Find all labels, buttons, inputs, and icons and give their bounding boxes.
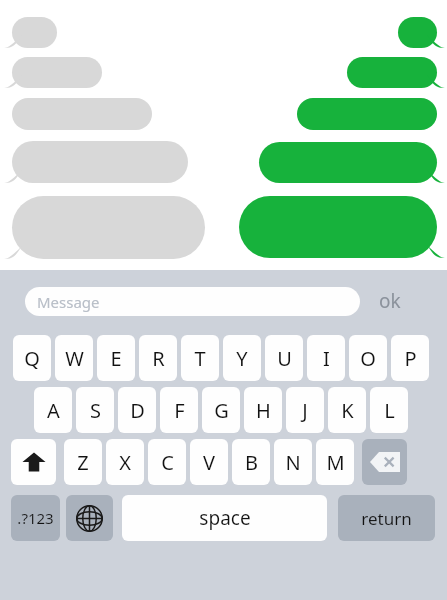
button[interactable]: space <box>122 495 327 541</box>
button[interactable]: Backspace <box>362 439 407 485</box>
staticText: J <box>302 397 308 424</box>
staticText: D <box>130 397 145 424</box>
button[interactable]: Q <box>13 335 51 381</box>
staticText: E <box>110 345 122 372</box>
button[interactable] <box>12 17 67 48</box>
button[interactable]: U <box>265 335 303 381</box>
button[interactable]: W <box>55 335 93 381</box>
button[interactable]: Change keyboard language <box>66 495 113 541</box>
button[interactable]: R <box>139 335 177 381</box>
staticText: O <box>360 345 376 372</box>
button[interactable]: Z <box>64 439 102 485</box>
button[interactable]: Shift <box>11 439 56 485</box>
staticText: I <box>323 345 330 372</box>
staticText: G <box>214 397 229 424</box>
button[interactable] <box>12 196 215 259</box>
button[interactable]: G <box>202 387 240 433</box>
button[interactable]: Y <box>223 335 261 381</box>
staticText: X <box>119 449 131 476</box>
button[interactable]: .?123 <box>11 495 60 541</box>
button[interactable] <box>347 57 447 88</box>
button[interactable]: D <box>118 387 156 433</box>
staticText: L <box>384 397 395 424</box>
button[interactable]: H <box>244 387 282 433</box>
button[interactable] <box>398 17 447 48</box>
staticText: Q <box>24 345 40 372</box>
staticText: M <box>326 449 345 476</box>
staticText: Y <box>236 345 248 372</box>
staticText: K <box>341 397 354 424</box>
button[interactable]: ok <box>360 281 420 321</box>
button[interactable]: T <box>181 335 219 381</box>
button[interactable] <box>12 57 112 88</box>
staticText: return <box>361 507 412 530</box>
staticText: V <box>203 449 215 476</box>
staticText: C <box>161 449 174 476</box>
button[interactable]: C <box>148 439 186 485</box>
button[interactable]: E <box>97 335 135 381</box>
button[interactable]: M <box>316 439 354 485</box>
button[interactable]: I <box>307 335 345 381</box>
button[interactable]: V <box>190 439 228 485</box>
button[interactable]: A <box>34 387 72 433</box>
button[interactable] <box>12 141 198 183</box>
staticText: B <box>245 449 258 476</box>
button[interactable]: F <box>160 387 198 433</box>
staticText: Message <box>37 292 100 312</box>
staticText: space <box>199 505 251 531</box>
button[interactable]: L <box>370 387 408 433</box>
button[interactable] <box>12 98 162 130</box>
button[interactable]: X <box>106 439 144 485</box>
button[interactable]: N <box>274 439 312 485</box>
button[interactable]: B <box>232 439 270 485</box>
staticText: A <box>47 397 60 424</box>
button[interactable]: J <box>286 387 324 433</box>
button[interactable]: O <box>349 335 387 381</box>
button[interactable]: S <box>76 387 114 433</box>
staticText: F <box>174 397 185 424</box>
staticText: Z <box>77 449 89 476</box>
staticText: S <box>90 397 101 424</box>
button[interactable] <box>239 196 447 258</box>
staticText: R <box>152 345 165 372</box>
staticText: U <box>277 345 292 372</box>
button[interactable] <box>297 98 447 130</box>
button[interactable]: P <box>391 335 429 381</box>
staticText: ok <box>379 288 401 314</box>
button[interactable]: K <box>328 387 366 433</box>
staticText: .?123 <box>17 508 54 528</box>
staticText: T <box>194 345 206 372</box>
button[interactable] <box>259 142 447 183</box>
staticText: H <box>256 397 271 424</box>
button[interactable]: return <box>338 495 435 541</box>
staticText: P <box>404 345 417 372</box>
button[interactable]: Message <box>25 287 360 316</box>
staticText: W <box>65 345 84 372</box>
staticText: N <box>285 449 301 476</box>
